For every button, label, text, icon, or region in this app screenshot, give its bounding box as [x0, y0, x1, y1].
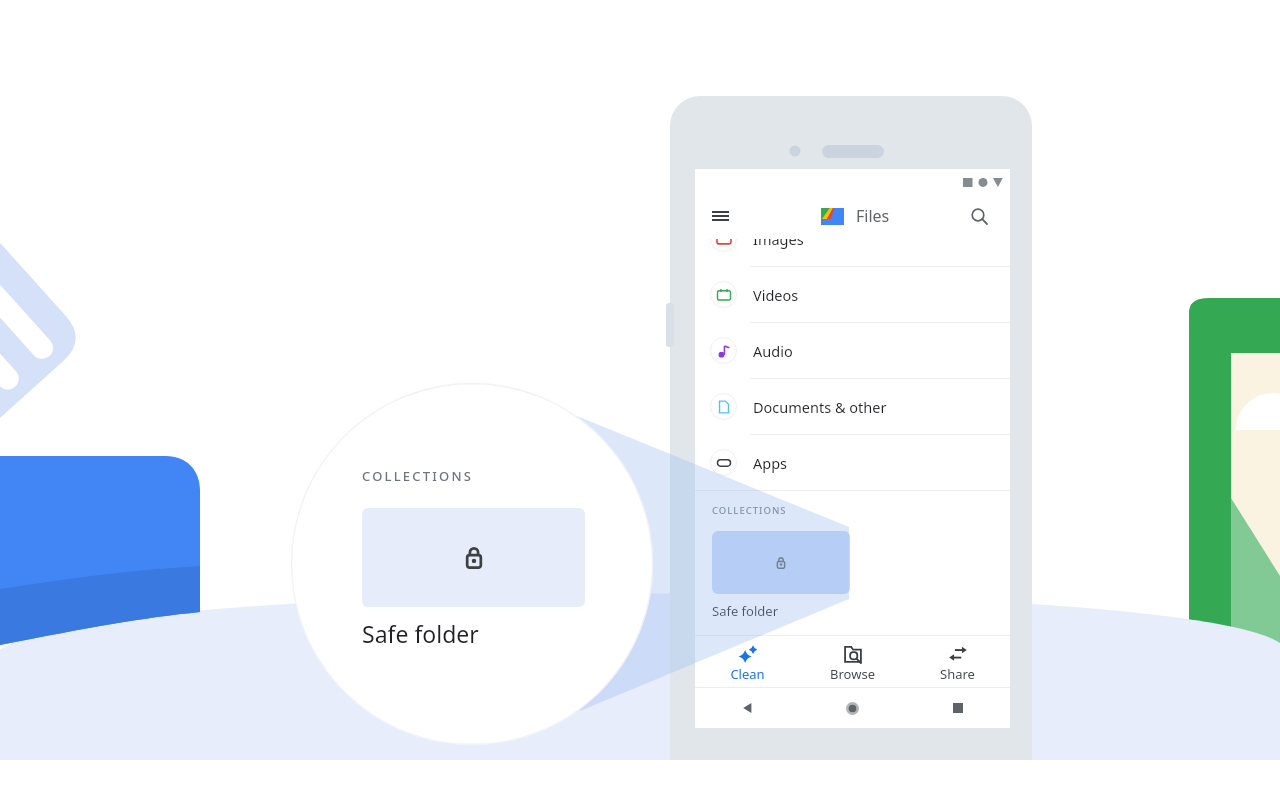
button[interactable]: Recents: [905, 688, 1010, 728]
button[interactable]: Share: [905, 636, 1010, 687]
staticText: Audio: [753, 341, 793, 361]
staticText: Files: [856, 205, 890, 227]
button[interactable]: Home: [800, 688, 905, 728]
button[interactable]: [712, 531, 850, 594]
button[interactable]: Search: [971, 193, 988, 239]
button[interactable]: Images: [695, 239, 1010, 266]
staticText: COLLECTIONS: [712, 504, 787, 517]
button[interactable]: Audio: [695, 323, 1010, 378]
staticText: Browse: [830, 665, 875, 683]
button[interactable]: Back: [695, 688, 800, 728]
button[interactable]: Clean: [695, 636, 800, 687]
staticText: Safe folder: [712, 602, 779, 620]
button[interactable]: [362, 508, 585, 607]
button[interactable]: Videos: [695, 267, 1010, 322]
staticText: Clean: [730, 665, 765, 683]
staticText: Share: [940, 665, 975, 683]
button[interactable]: Menu: [712, 193, 729, 239]
staticText: Apps: [753, 453, 788, 473]
staticText: COLLECTIONS: [362, 467, 474, 485]
button[interactable]: Documents & other: [695, 379, 1010, 434]
staticText: Documents & other: [753, 397, 887, 417]
staticText: Videos: [753, 285, 799, 305]
button[interactable]: Apps: [695, 435, 1010, 490]
staticText: Safe folder: [362, 618, 479, 649]
button[interactable]: Browse: [800, 636, 905, 687]
staticText: Images: [753, 239, 804, 249]
